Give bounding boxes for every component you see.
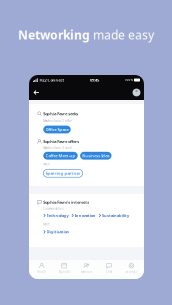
- staticText: More: [43, 222, 50, 226]
- button[interactable]: Back: [31, 87, 42, 98]
- staticText: Technology: [46, 213, 68, 218]
- staticText: Digitisation: [46, 229, 69, 234]
- staticText: 09:45: [90, 77, 99, 83]
- button[interactable]: Favorites: [75, 259, 98, 279]
- staticText: Commonalities: [43, 207, 63, 210]
- staticText: Favorites: [81, 270, 92, 273]
- staticText: Matches Icons 'I offer': [43, 119, 73, 123]
- staticText: Sophia Favre's interests: [43, 199, 89, 205]
- button[interactable]: Profile: [131, 87, 142, 98]
- staticText: Matches Icons 'I seek': [43, 146, 72, 150]
- button[interactable]: Technology: [43, 212, 68, 218]
- button[interactable]: Business Idea: [80, 152, 111, 160]
- staticText: More: [43, 162, 50, 166]
- staticText: Office Space: [45, 127, 68, 132]
- staticText: Coffee Meet-up: [45, 153, 75, 158]
- staticText: 100%: [124, 78, 132, 82]
- staticText: Chat: [106, 270, 112, 273]
- staticText: Sparring partner: [45, 171, 80, 176]
- button[interactable]: Digitisation: [43, 229, 69, 235]
- button[interactable]: Sustainability: [99, 212, 129, 218]
- staticText: Sustainability: [102, 213, 129, 218]
- button[interactable]: Coffee Meet-up: [43, 152, 78, 160]
- button[interactable]: Office Space: [43, 126, 71, 133]
- button[interactable]: Settings: [120, 259, 142, 279]
- button[interactable]: Agenda: [53, 259, 75, 279]
- staticText: Business Idea: [82, 153, 109, 158]
- staticText: made easy: [93, 27, 154, 43]
- staticText: Networking: [18, 27, 93, 43]
- staticText: Sophia Favre seeks: [43, 111, 78, 116]
- staticText: Sophia Favre offers: [43, 139, 79, 144]
- button[interactable]: Chat: [98, 259, 120, 279]
- button[interactable]: Sparring partner: [43, 169, 83, 177]
- staticText: Settings: [126, 270, 137, 273]
- staticText: HZ2 Connect: [39, 77, 64, 83]
- button[interactable]: Innovation: [71, 212, 96, 218]
- staticText: Booth: [37, 270, 46, 273]
- button[interactable]: Booth: [30, 259, 53, 279]
- staticText: Innovation: [75, 213, 96, 218]
- staticText: Agenda: [59, 270, 70, 273]
